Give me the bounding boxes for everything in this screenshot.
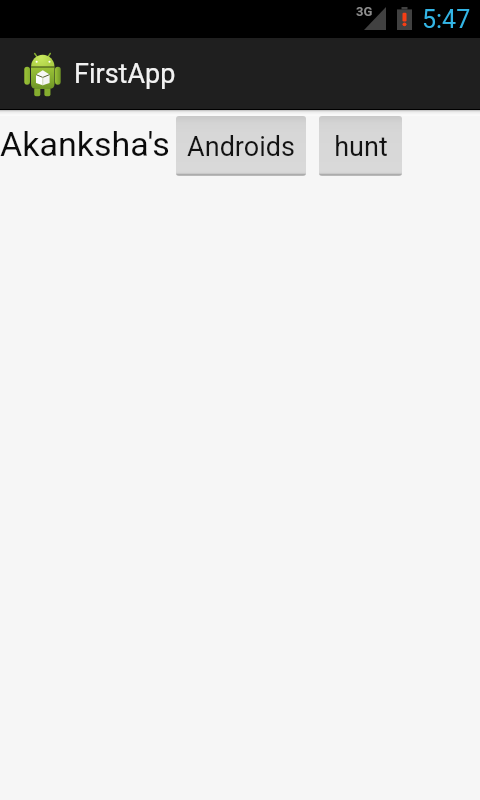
- staticText: 3G: [356, 4, 373, 19]
- staticText: FirstApp: [74, 58, 176, 90]
- staticText: hunt: [334, 131, 388, 163]
- staticText: Akanksha's: [0, 124, 170, 164]
- button[interactable]: Androids: [176, 116, 306, 176]
- button[interactable]: FirstApp home: [0, 38, 185, 110]
- other: Battery low: [397, 7, 412, 30]
- button[interactable]: hunt: [319, 116, 402, 176]
- staticText: Androids: [187, 131, 295, 163]
- staticText: 5:47: [422, 5, 471, 34]
- other: FirstApp home: [24, 53, 61, 97]
- other: Mobile signal: [364, 7, 386, 30]
